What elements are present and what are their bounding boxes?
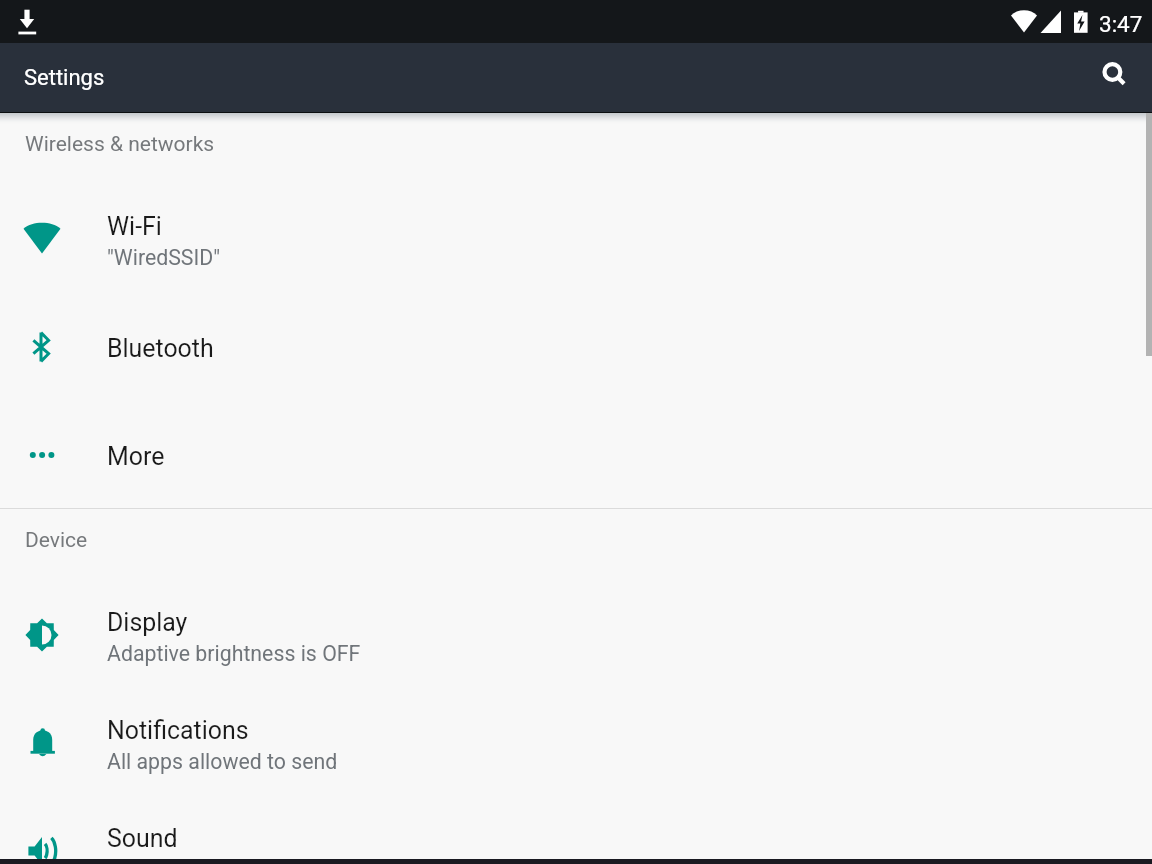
button[interactable]: Bluetooth (0, 294, 1152, 402)
staticText: More (107, 442, 165, 471)
button[interactable]: Sound (0, 798, 1152, 859)
staticText: Display (107, 608, 188, 637)
staticText: 3:47 (1099, 11, 1143, 37)
staticText: Wi-Fi (107, 212, 162, 241)
staticText: Adaptive brightness is OFF (107, 641, 361, 666)
staticText: Settings (24, 65, 105, 91)
staticText: Wireless & networks (25, 132, 215, 157)
button[interactable]: Notifications (0, 690, 1152, 798)
other: Download (16, 8, 40, 36)
staticText: Notifications (107, 716, 249, 745)
staticText: "WiredSSID" (107, 245, 221, 270)
button[interactable]: Wi-Fi (0, 186, 1152, 294)
button[interactable]: Display (0, 582, 1152, 690)
button[interactable]: More (0, 402, 1152, 508)
staticText: All apps allowed to send (107, 749, 338, 774)
button[interactable]: Search (1088, 48, 1136, 96)
staticText: Sound (107, 824, 178, 853)
staticText: Device (25, 528, 88, 553)
staticText: Bluetooth (107, 334, 214, 363)
